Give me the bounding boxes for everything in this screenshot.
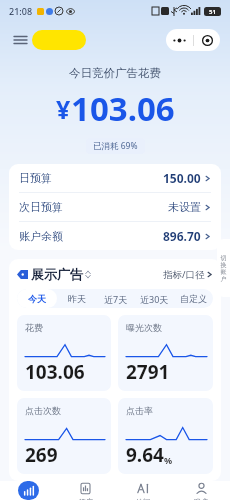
button[interactable]: 首页	[0, 481, 57, 500]
button[interactable]: 近30天	[135, 289, 174, 308]
button[interactable]: 昨天	[57, 289, 96, 308]
button[interactable]	[32, 30, 86, 50]
staticText: 点击次数	[25, 405, 61, 416]
button[interactable]: 妙问	[114, 481, 172, 500]
staticText: ¥	[56, 92, 71, 126]
staticText: 切换账户	[219, 254, 228, 283]
button[interactable]: 自定义	[174, 289, 213, 308]
staticText: 103.06	[71, 86, 175, 131]
staticText: 269	[25, 442, 58, 468]
staticText: 妙问	[136, 497, 150, 500]
button[interactable]: 次日预算	[9, 193, 221, 221]
staticText: 近7天	[104, 293, 128, 305]
staticText: 9.64	[126, 442, 164, 468]
staticText: 今日竞价广告花费	[69, 66, 161, 80]
staticText: 展示广告	[31, 266, 83, 282]
staticText: 51	[209, 8, 216, 16]
button[interactable]: 近7天	[96, 289, 135, 308]
staticText: %	[164, 454, 173, 466]
button[interactable]: 推广	[57, 481, 114, 500]
staticText: 自定义	[180, 293, 207, 304]
button[interactable]: 切换账户	[217, 239, 230, 297]
staticText: 2791	[126, 359, 170, 385]
button[interactable]: 点击次数	[17, 398, 111, 474]
staticText: 日预算	[19, 171, 52, 185]
staticText: 账户余额	[19, 229, 63, 243]
staticText: 103.06	[25, 359, 85, 385]
staticText: 指标/口径	[163, 268, 205, 281]
button[interactable]: 花费	[17, 315, 111, 391]
staticText: 昨天	[68, 293, 86, 304]
button[interactable]: Close	[194, 29, 220, 51]
button[interactable]: 展示广告	[17, 266, 91, 282]
staticText: 次日预算	[19, 200, 63, 214]
button[interactable]: 点击率	[118, 398, 213, 474]
staticText: 账户	[194, 497, 208, 500]
button[interactable]: 日预算	[9, 164, 221, 192]
staticText: 曝光次数	[126, 322, 162, 333]
staticText: 推广	[79, 497, 93, 500]
staticText: 花费	[25, 322, 43, 333]
button[interactable]: Menu	[10, 30, 30, 50]
button[interactable]: 账户余额	[9, 222, 221, 250]
staticText: 今天	[28, 293, 46, 304]
staticText: 点击率	[126, 405, 153, 416]
button[interactable]: 指标/口径	[163, 268, 213, 281]
staticText: 150.00	[163, 170, 201, 186]
button[interactable]: 已消耗 69%	[93, 140, 138, 152]
button[interactable]: 曝光次数	[118, 315, 213, 391]
button[interactable]: 今天	[17, 289, 57, 308]
staticText: 已消耗 69%	[93, 140, 138, 152]
staticText: 未设置	[168, 200, 201, 214]
staticText: 896.70	[163, 228, 201, 244]
button[interactable]: More options	[166, 29, 193, 51]
button[interactable]: 账户	[172, 481, 230, 500]
staticText: 21:08	[9, 5, 33, 17]
staticText: 近30天	[140, 293, 169, 305]
